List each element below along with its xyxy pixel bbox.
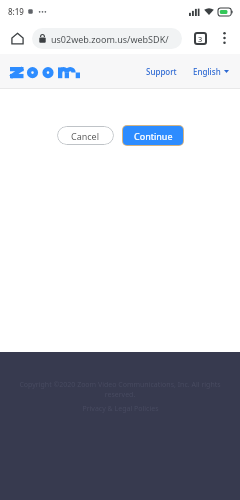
button[interactable]: English — [190, 62, 232, 81]
button[interactable]: Privacy & Legal Policies — [78, 403, 163, 415]
staticText: Privacy & Legal Policies — [82, 404, 159, 414]
button[interactable]: us02web.zoom.us/webSDK/rec: — [32, 28, 182, 49]
staticText: Cancel — [71, 130, 100, 142]
staticText: us02web.zoom.us/webSDK/rec: — [51, 33, 174, 45]
button[interactable]: Tabs, 3 open — [188, 26, 212, 50]
staticText: Support — [146, 66, 177, 77]
staticText: English — [193, 66, 221, 77]
staticText: 8:19 — [8, 6, 24, 17]
button[interactable]: Cancel — [57, 126, 114, 145]
button[interactable]: Support — [143, 62, 180, 81]
button[interactable]: More options — [213, 27, 235, 49]
staticText: 3 — [198, 34, 203, 44]
staticText: Continue — [134, 130, 173, 142]
button[interactable]: Zoom home — [10, 61, 80, 81]
button[interactable]: Continue — [123, 126, 183, 145]
button[interactable]: Home — [5, 26, 29, 50]
